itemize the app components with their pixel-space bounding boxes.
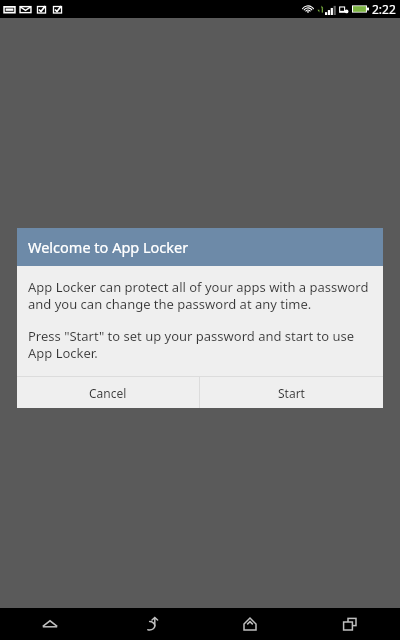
button[interactable]: Home: [200, 608, 300, 640]
staticText: Start: [278, 385, 305, 401]
button[interactable]: Back: [100, 608, 200, 640]
button[interactable]: Cancel: [17, 377, 199, 408]
staticText: 2:22: [372, 1, 396, 17]
staticText: Welcome to App Locker: [28, 237, 189, 257]
staticText: Press "Start" to set up your password an…: [28, 327, 372, 362]
staticText: App Locker can protect all of your apps …: [28, 278, 372, 313]
button[interactable]: Recent apps: [300, 608, 400, 640]
button[interactable]: Menu: [0, 608, 100, 640]
staticText: Cancel: [89, 385, 127, 401]
button[interactable]: Start: [200, 377, 383, 408]
